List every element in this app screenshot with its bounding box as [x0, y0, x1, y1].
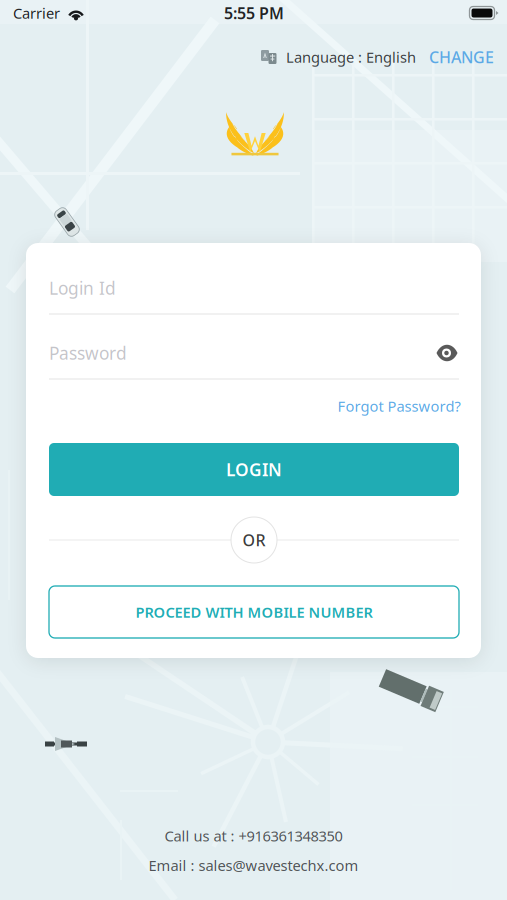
button[interactable]: Show password: [431, 341, 462, 365]
button[interactable]: LOGIN: [49, 443, 459, 496]
staticText: Login Id: [49, 276, 116, 299]
staticText: Email : sales@wavestechx.com: [148, 855, 358, 875]
staticText: Language : English: [286, 47, 416, 67]
button[interactable]: Forgot Password?: [331, 391, 466, 421]
staticText: OR: [242, 529, 265, 551]
staticText: Call us at : +916361348350: [164, 826, 342, 845]
staticText: CHANGE: [429, 46, 494, 68]
button[interactable]: Password: [49, 336, 419, 370]
staticText: PROCEED WITH MOBILE NUMBER: [135, 602, 372, 622]
staticText: Carrier: [13, 3, 60, 23]
button[interactable]: PROCEED WITH MOBILE NUMBER: [49, 586, 459, 638]
staticText: LOGIN: [226, 458, 282, 481]
staticText: 5:55 PM: [224, 2, 284, 24]
button[interactable]: Login Id: [49, 264, 459, 322]
button[interactable]: CHANGE: [426, 42, 497, 72]
staticText: Forgot Password?: [337, 396, 460, 416]
staticText: Password: [49, 341, 127, 364]
